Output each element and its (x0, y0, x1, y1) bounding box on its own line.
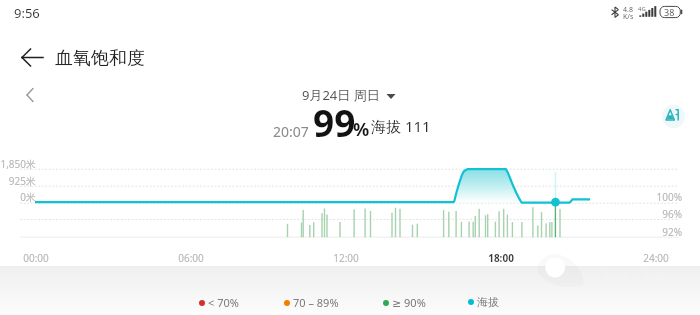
staticText: 9:56 (14, 4, 40, 22)
staticText: 1,850米 (0, 157, 36, 171)
staticText: 0米 (0, 190, 36, 204)
staticText: 96% (592, 207, 682, 221)
staticText: 100% (592, 190, 682, 204)
staticText: 4G (638, 5, 646, 13)
staticText: 70 – 89% (293, 295, 339, 310)
staticText: 06:00 (161, 251, 221, 265)
staticText: 9月24日 周日 (302, 86, 380, 104)
staticText: 99 (313, 97, 356, 147)
staticText: 925米 (0, 174, 36, 188)
button[interactable]: 9月24日 周日 (302, 86, 390, 104)
staticText: 기기기씨 (590, 262, 670, 287)
button[interactable]: 海拔 (468, 295, 496, 309)
staticText: < 70% (208, 295, 239, 310)
staticText: ≥ 90% (392, 295, 426, 310)
staticText: 38 (664, 6, 675, 18)
staticText: 4.8 (623, 5, 633, 15)
staticText: 12:00 (316, 251, 376, 265)
button[interactable]: Previous day (18, 83, 42, 107)
button[interactable]: AI assistant (662, 105, 685, 128)
staticText: 海拔 111 (371, 116, 431, 136)
staticText: 24:00 (626, 251, 686, 265)
staticText: 血氧饱和度 (55, 47, 145, 70)
staticText: % (353, 117, 370, 142)
staticText: 18:00 (471, 251, 531, 265)
button[interactable]: Back (13, 45, 53, 73)
staticText: 92% (592, 225, 682, 239)
staticText: 00:00 (6, 251, 66, 265)
button[interactable]: ≥ 90% (383, 295, 423, 310)
staticText: 海拔 (477, 295, 499, 309)
button[interactable]: 70 – 89% (284, 295, 336, 310)
button[interactable]: < 70% (199, 295, 236, 310)
staticText: K/s (623, 12, 634, 22)
staticText: 20:07 (273, 122, 309, 141)
